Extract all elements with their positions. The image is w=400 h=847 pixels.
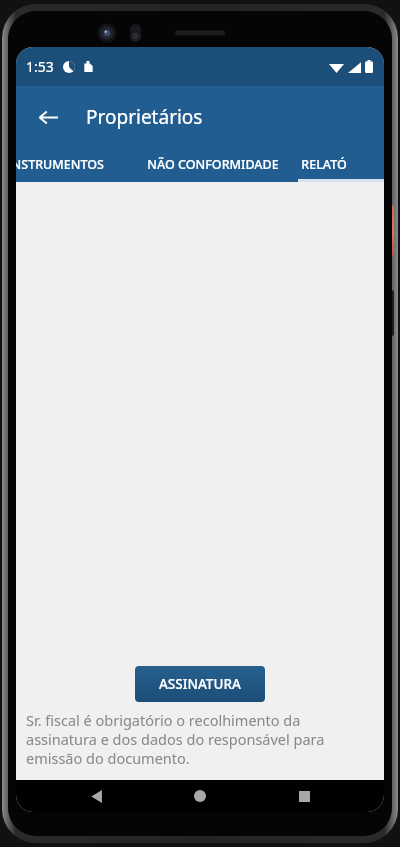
button[interactable]: Recent apps (280, 780, 328, 812)
staticText: Sr. fiscal é obrigatório o recolhimento … (26, 710, 370, 768)
button[interactable]: INSTRUMENTOS (16, 147, 128, 182)
button[interactable]: Back (26, 95, 70, 139)
button[interactable]: ASSINATURA (135, 666, 265, 702)
staticText: 1:53 (26, 57, 54, 76)
staticText: ASSINATURA (159, 675, 241, 693)
button[interactable]: RELATÓRIOS (298, 147, 350, 182)
staticText: INSTRUMENTOS (16, 156, 104, 173)
button[interactable]: Back (72, 780, 120, 812)
button[interactable]: Home (176, 780, 224, 812)
staticText: RELATÓRIOS (298, 156, 350, 173)
staticText: Proprietários (86, 104, 203, 130)
other: Power button (388, 205, 394, 257)
button[interactable]: NÃO CONFORMIDADE (128, 147, 298, 182)
staticText: NÃO CONFORMIDADE (147, 156, 279, 173)
